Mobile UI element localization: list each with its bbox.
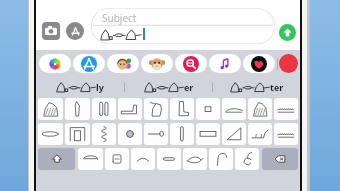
staticText: ly [96,81,104,93]
button[interactable]: Monkey Memoji [141,54,173,73]
button[interactable]: ter [213,77,300,97]
button[interactable]: Hieroglyph key 17 [222,123,246,145]
button[interactable]: Hieroglyph key 10 [38,123,63,145]
button[interactable]: Photos [39,54,71,73]
button[interactable]: Hieroglyph key 8 [248,98,272,120]
button[interactable]: Hieroglyph key 26 [235,148,259,170]
button[interactable]: Hieroglyph key 5 [170,98,194,120]
button[interactable]: Send [279,24,296,41]
button[interactable]: Hieroglyph key 3 [118,98,142,120]
button[interactable]: App Store [73,54,105,73]
button[interactable]: Hieroglyph key 11 [65,123,90,145]
button[interactable]: Camera [42,22,60,40]
button[interactable]: More apps [279,54,298,73]
button[interactable]: Music [209,54,241,73]
button[interactable]: Delete [262,148,298,170]
button[interactable]: ly [36,77,124,97]
button[interactable]: Digital Touch [243,54,275,73]
button[interactable]: Memoji [107,54,139,73]
button[interactable]: Hieroglyph key 1 [65,98,90,120]
staticText: ter [270,81,284,93]
button[interactable]: Subject [91,8,275,44]
staticText: Subject [102,11,137,25]
button[interactable]: Hieroglyph key 25 [209,148,233,170]
button[interactable]: Hieroglyph key 12 [92,123,116,145]
button[interactable]: Hieroglyph key 13 [118,123,142,145]
button[interactable]: Hieroglyph key 9 [274,98,298,120]
button[interactable]: Hieroglyph key 20 [78,148,103,170]
button[interactable]: er [125,77,212,97]
button[interactable]: Hieroglyph key 23 [157,148,181,170]
button[interactable]: Hieroglyph key 2 [92,98,116,120]
button[interactable]: Hieroglyph key 24 [183,148,207,170]
button[interactable]: Hieroglyph key 15 [170,123,194,145]
button[interactable]: Hieroglyph key 18 [248,123,272,145]
button[interactable]: Shift [38,148,75,170]
button[interactable]: Hieroglyph key 6 [196,98,220,120]
button[interactable]: Hieroglyph key 16 [196,123,220,145]
button[interactable]: Images [175,54,207,73]
button[interactable]: Hieroglyph key 7 [222,98,246,120]
button[interactable]: App Store [66,22,84,40]
button[interactable]: Hieroglyph key 14 [144,123,168,145]
button[interactable]: Hieroglyph key 4 [144,98,168,120]
button[interactable]: Hieroglyph key 19 [274,123,298,145]
button[interactable]: Hieroglyph key 0 [38,98,63,120]
staticText: er [184,81,194,93]
button[interactable]: Hieroglyph key 21 [105,148,129,170]
button[interactable]: Hieroglyph key 22 [131,148,155,170]
